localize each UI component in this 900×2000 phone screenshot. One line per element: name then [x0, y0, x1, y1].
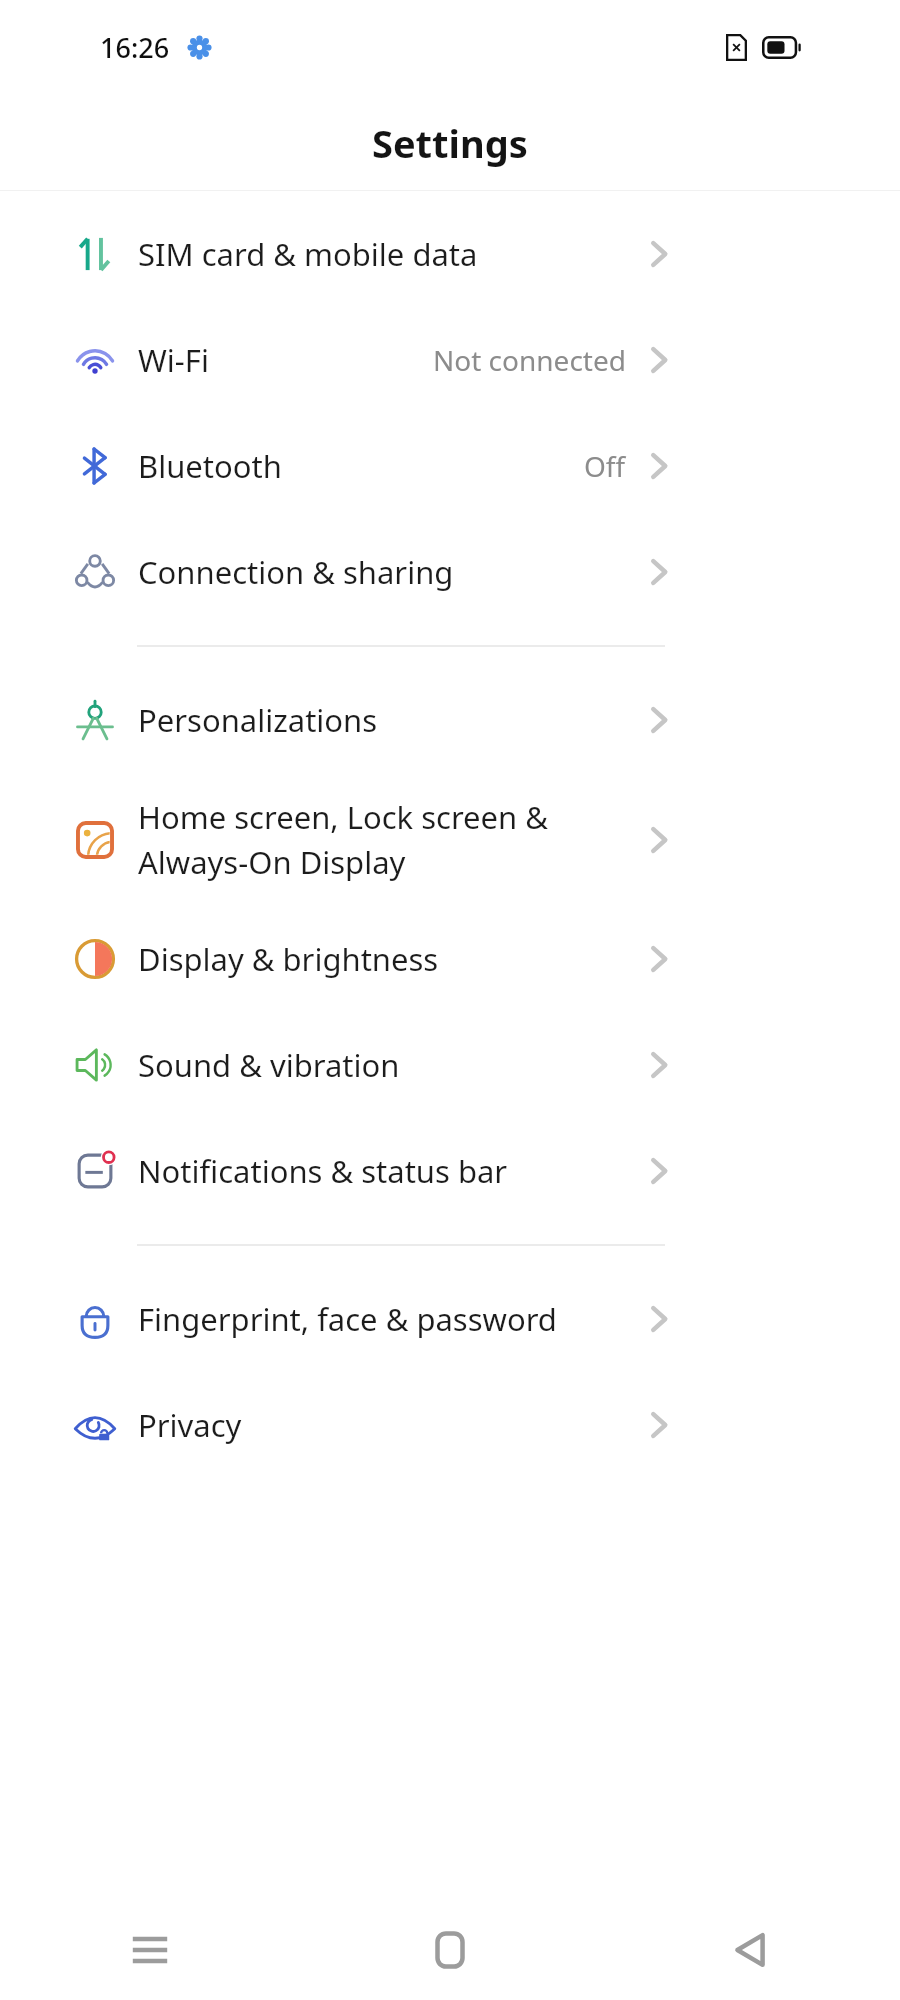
staticText: Privacy	[138, 1404, 648, 1446]
button[interactable]: Wi-Fi	[0, 307, 900, 413]
button[interactable]: Recent apps	[0, 1900, 300, 2000]
staticText: Wi-Fi	[138, 339, 433, 381]
button[interactable]: Sound & vibration	[0, 1012, 900, 1118]
staticText: SIM card & mobile data	[138, 233, 648, 275]
staticText: Settings	[372, 117, 528, 169]
button[interactable]: Personalizations	[0, 667, 900, 773]
staticText: Off	[584, 447, 626, 485]
staticText: Sound & vibration	[138, 1044, 648, 1086]
button[interactable]: Privacy	[0, 1372, 900, 1478]
button[interactable]: Home	[300, 1900, 600, 2000]
staticText: Not connected	[433, 341, 626, 379]
button[interactable]: Home screen, Lock screen & Always-On Dis…	[0, 773, 900, 906]
button[interactable]: Bluetooth	[0, 413, 900, 519]
staticText: Notifications & status bar	[138, 1150, 648, 1192]
button[interactable]: Back	[600, 1900, 900, 2000]
staticText: 16:26	[100, 29, 170, 66]
staticText: Bluetooth	[138, 445, 584, 487]
button[interactable]: Fingerprint, face & password	[0, 1266, 900, 1372]
button[interactable]: Connection & sharing	[0, 519, 900, 625]
staticText: Connection & sharing	[138, 551, 648, 593]
button[interactable]: Notifications & status bar	[0, 1118, 900, 1224]
button[interactable]: Display & brightness	[0, 906, 900, 1012]
staticText: Home screen, Lock screen & Always-On Dis…	[138, 796, 648, 883]
button[interactable]: SIM card & mobile data	[0, 201, 900, 307]
staticText: Fingerprint, face & password	[138, 1298, 648, 1340]
staticText: Display & brightness	[138, 938, 648, 980]
staticText: Personalizations	[138, 699, 648, 741]
